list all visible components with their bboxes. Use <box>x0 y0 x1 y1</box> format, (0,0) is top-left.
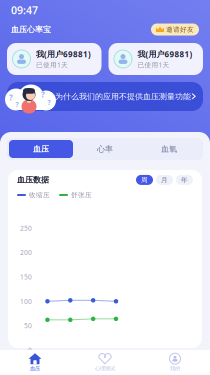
staticText: ? <box>9 92 13 103</box>
staticText: 为什么我们的应用不提供血压测量功能 <box>55 92 191 101</box>
button[interactable]: 年 <box>176 175 193 185</box>
staticText: 收缩压 <box>29 191 50 199</box>
staticText: 心理测试 <box>95 365 115 372</box>
staticText: 年 <box>181 176 188 184</box>
button[interactable]: 心率 <box>73 140 137 158</box>
staticText: 我的 <box>170 365 180 372</box>
staticText: 周四 <box>111 356 121 363</box>
staticText: 已使用1天 <box>137 60 169 69</box>
staticText: 我(用户69881) <box>137 49 192 59</box>
staticText: ? <box>15 100 18 109</box>
staticText: 已使用1天 <box>36 60 68 69</box>
staticText: 我(用户69881) <box>36 49 91 59</box>
staticText: 邀请好友 <box>166 25 194 34</box>
staticText: 周日 <box>180 356 190 363</box>
staticText: 100 <box>20 297 32 306</box>
staticText: 血氧 <box>161 144 177 154</box>
button[interactable]: 我(用户69881) <box>108 43 203 75</box>
staticText: 50 <box>24 321 32 330</box>
button[interactable]: 我(用户69881) <box>7 43 101 75</box>
staticText: 周 <box>141 176 148 184</box>
staticText: 200 <box>20 248 32 257</box>
button[interactable]: 血压 <box>9 140 73 158</box>
staticText: 心率 <box>97 144 113 154</box>
button[interactable]: 邀请好友 <box>151 23 199 35</box>
button[interactable]: ? <box>7 82 203 111</box>
staticText: 舒张压 <box>71 191 92 199</box>
staticText: 血压 <box>33 144 49 154</box>
button[interactable]: 我的 <box>140 350 210 375</box>
staticText: 0 <box>28 346 32 355</box>
staticText: 血压 <box>30 365 40 372</box>
staticText: 250 <box>20 224 32 233</box>
staticText: ? <box>41 89 45 100</box>
button[interactable]: 血氧 <box>137 140 201 158</box>
staticText: 血压心率宝 <box>11 25 51 34</box>
staticText: ? <box>47 98 50 107</box>
staticText: 月 <box>161 176 168 184</box>
button[interactable]: 周 <box>136 175 153 185</box>
button[interactable]: 心理测试 <box>70 350 140 375</box>
button[interactable]: 月 <box>156 175 173 185</box>
staticText: 150 <box>20 272 32 281</box>
staticText: 09:47 <box>11 3 38 17</box>
staticText: 血压数据 <box>17 175 49 185</box>
button[interactable]: 血压 <box>0 350 70 375</box>
